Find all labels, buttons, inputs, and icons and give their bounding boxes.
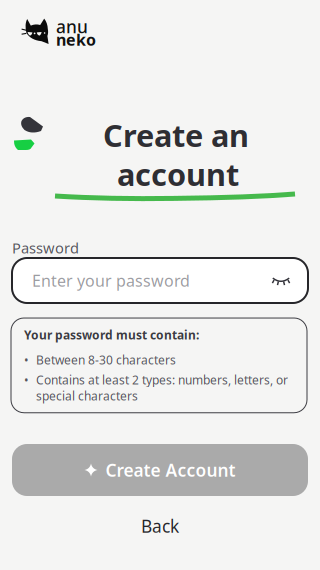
staticText: • [24, 352, 29, 368]
staticText: Create an [103, 115, 249, 155]
staticText: Create Account [105, 458, 235, 481]
staticText: account [117, 154, 239, 194]
staticText: Back [141, 514, 179, 537]
staticText: neko [56, 29, 96, 50]
button[interactable]: Create Account [12, 444, 308, 496]
staticText: Your password must contain: [24, 327, 199, 343]
staticText: Enter your password [32, 270, 190, 291]
button[interactable]: Show password [268, 267, 294, 293]
staticText: Contains at least 2 types: numbers, lett… [36, 372, 288, 404]
staticText: Between 8-30 characters [36, 352, 176, 368]
staticText: • [24, 372, 29, 388]
button[interactable]: Back [115, 511, 205, 541]
staticText: anu [56, 15, 88, 38]
staticText: Password [12, 238, 79, 257]
